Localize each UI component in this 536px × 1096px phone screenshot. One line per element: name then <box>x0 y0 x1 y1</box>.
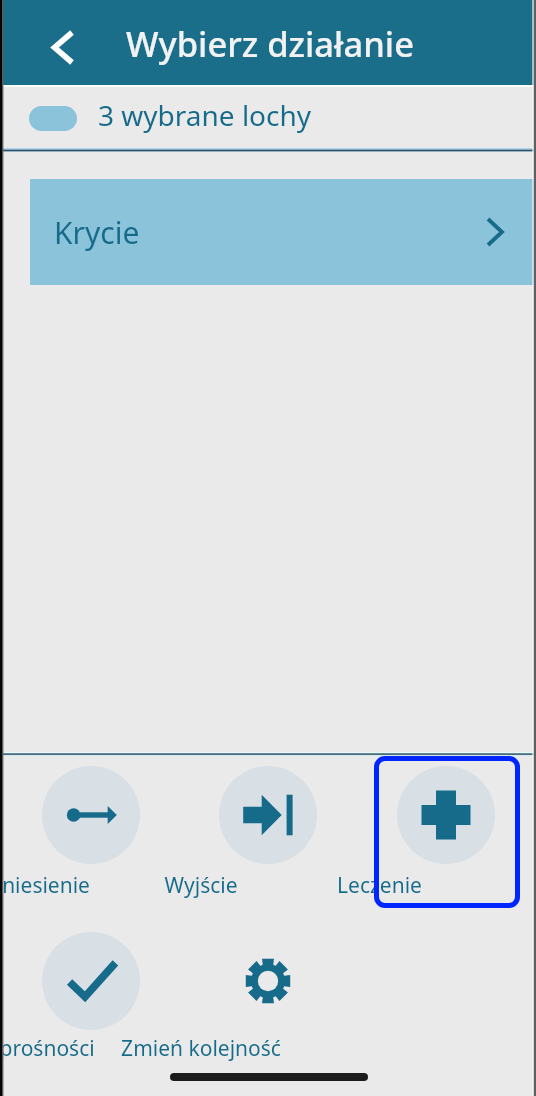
button[interactable]: Zmień kolejność <box>195 922 341 1074</box>
staticText: Test prośności <box>0 1034 95 1063</box>
staticText: Zmień kolejność <box>121 1034 281 1063</box>
staticText: Wyjście <box>164 871 238 900</box>
button[interactable]: Przeniesienie <box>18 756 164 908</box>
button[interactable]: Wyjście <box>195 756 341 908</box>
staticText: Leczenie <box>337 871 422 900</box>
button[interactable]: Leczenie <box>373 756 519 908</box>
staticText: 3 wybrane lochy <box>98 96 312 134</box>
staticText: Przeniesienie <box>0 871 90 900</box>
staticText: Krycie <box>54 212 140 253</box>
button[interactable]: Back <box>39 23 87 71</box>
button[interactable]: Test prośności <box>18 922 164 1074</box>
staticText: Wybierz działanie <box>126 20 414 67</box>
button[interactable]: Krycie <box>30 179 536 285</box>
